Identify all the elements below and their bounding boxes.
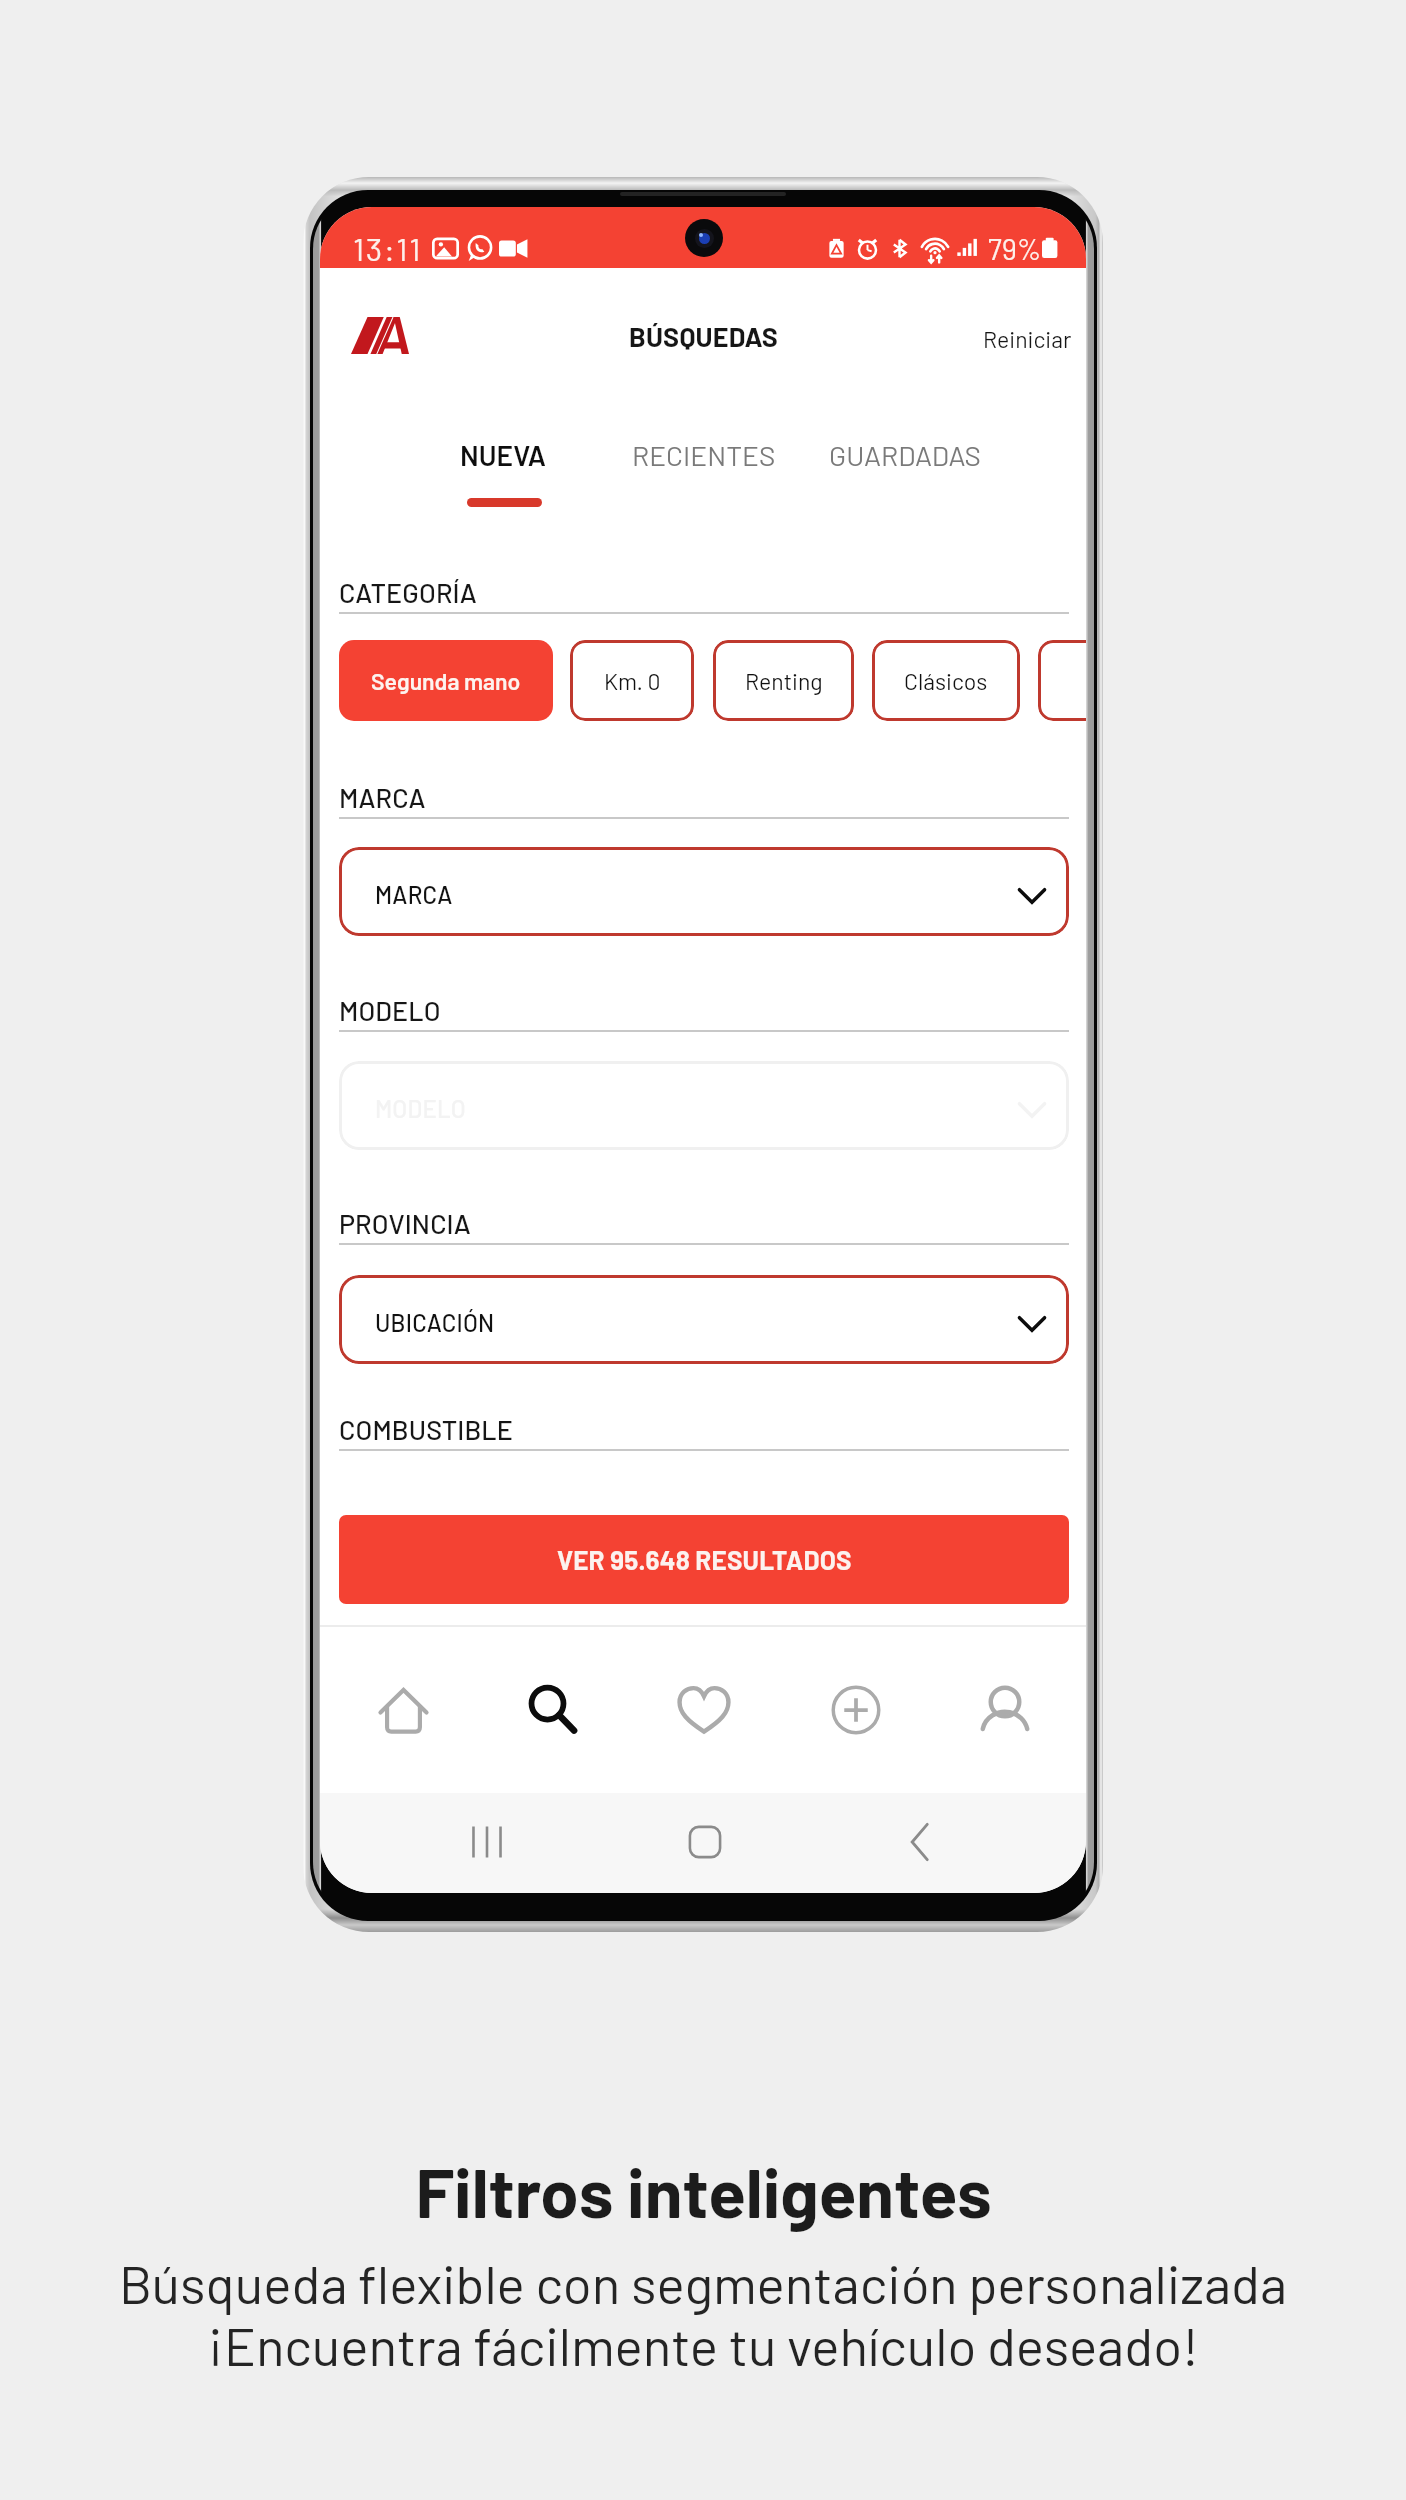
button[interactable]: NUEVA bbox=[405, 416, 601, 520]
button[interactable] bbox=[1038, 640, 1086, 721]
staticText: MARCA bbox=[375, 880, 453, 909]
button[interactable]: Reiniciar bbox=[960, 311, 1072, 367]
button[interactable]: UBICACIÓN bbox=[339, 1275, 1069, 1364]
button[interactable]: Create listing bbox=[800, 1654, 912, 1766]
button[interactable]: Home bbox=[659, 1796, 751, 1888]
button[interactable]: AutoScout24 home bbox=[351, 317, 409, 354]
staticText: Km. 0 bbox=[604, 667, 661, 695]
staticText: Renting bbox=[745, 667, 823, 695]
staticText: 13:11 bbox=[353, 229, 423, 267]
button[interactable]: Back bbox=[875, 1796, 967, 1888]
button[interactable]: Km. 0 bbox=[570, 640, 694, 721]
button[interactable]: Clásicos bbox=[872, 640, 1020, 721]
staticText: Reiniciar bbox=[983, 325, 1072, 353]
staticText: MODELO bbox=[339, 994, 441, 1026]
staticText: RECIENTES bbox=[632, 438, 776, 472]
staticText: COMBUSTIBLE bbox=[339, 1413, 514, 1445]
staticText: NUEVA bbox=[460, 438, 546, 472]
button[interactable]: Favourites bbox=[648, 1654, 760, 1766]
button[interactable]: Renting bbox=[713, 640, 854, 721]
staticText: 79% bbox=[988, 231, 1042, 266]
staticText: VER 95.648 RESULTADOS bbox=[557, 1544, 852, 1575]
staticText: MODELO bbox=[375, 1094, 466, 1123]
button[interactable]: MODELO bbox=[339, 1061, 1069, 1150]
button[interactable]: Recent apps bbox=[441, 1796, 533, 1888]
button[interactable]: VER 95.648 RESULTADOS bbox=[339, 1515, 1069, 1604]
staticText: BÚSQUEDAS bbox=[629, 320, 779, 352]
button[interactable]: Profile bbox=[949, 1654, 1061, 1766]
staticText: GUARDADAS bbox=[829, 438, 981, 472]
staticText: PROVINCIA bbox=[339, 1207, 471, 1239]
staticText: UBICACIÓN bbox=[375, 1308, 495, 1337]
button[interactable]: Search bbox=[497, 1654, 609, 1766]
staticText: Búsqueda flexible con segmentación perso… bbox=[119, 2251, 1287, 2376]
button[interactable]: MARCA bbox=[339, 847, 1069, 936]
button[interactable]: GUARDADAS bbox=[807, 416, 1003, 520]
staticText: Segunda mano bbox=[371, 667, 521, 695]
button[interactable]: Home bbox=[347, 1654, 459, 1766]
staticText: Filtros inteligentes bbox=[415, 2149, 992, 2232]
button[interactable]: RECIENTES bbox=[606, 416, 802, 520]
staticText: CATEGORÍA bbox=[339, 576, 477, 608]
staticText: MARCA bbox=[339, 781, 426, 813]
button[interactable]: Segunda mano bbox=[339, 640, 553, 721]
staticText: Clásicos bbox=[904, 667, 988, 695]
